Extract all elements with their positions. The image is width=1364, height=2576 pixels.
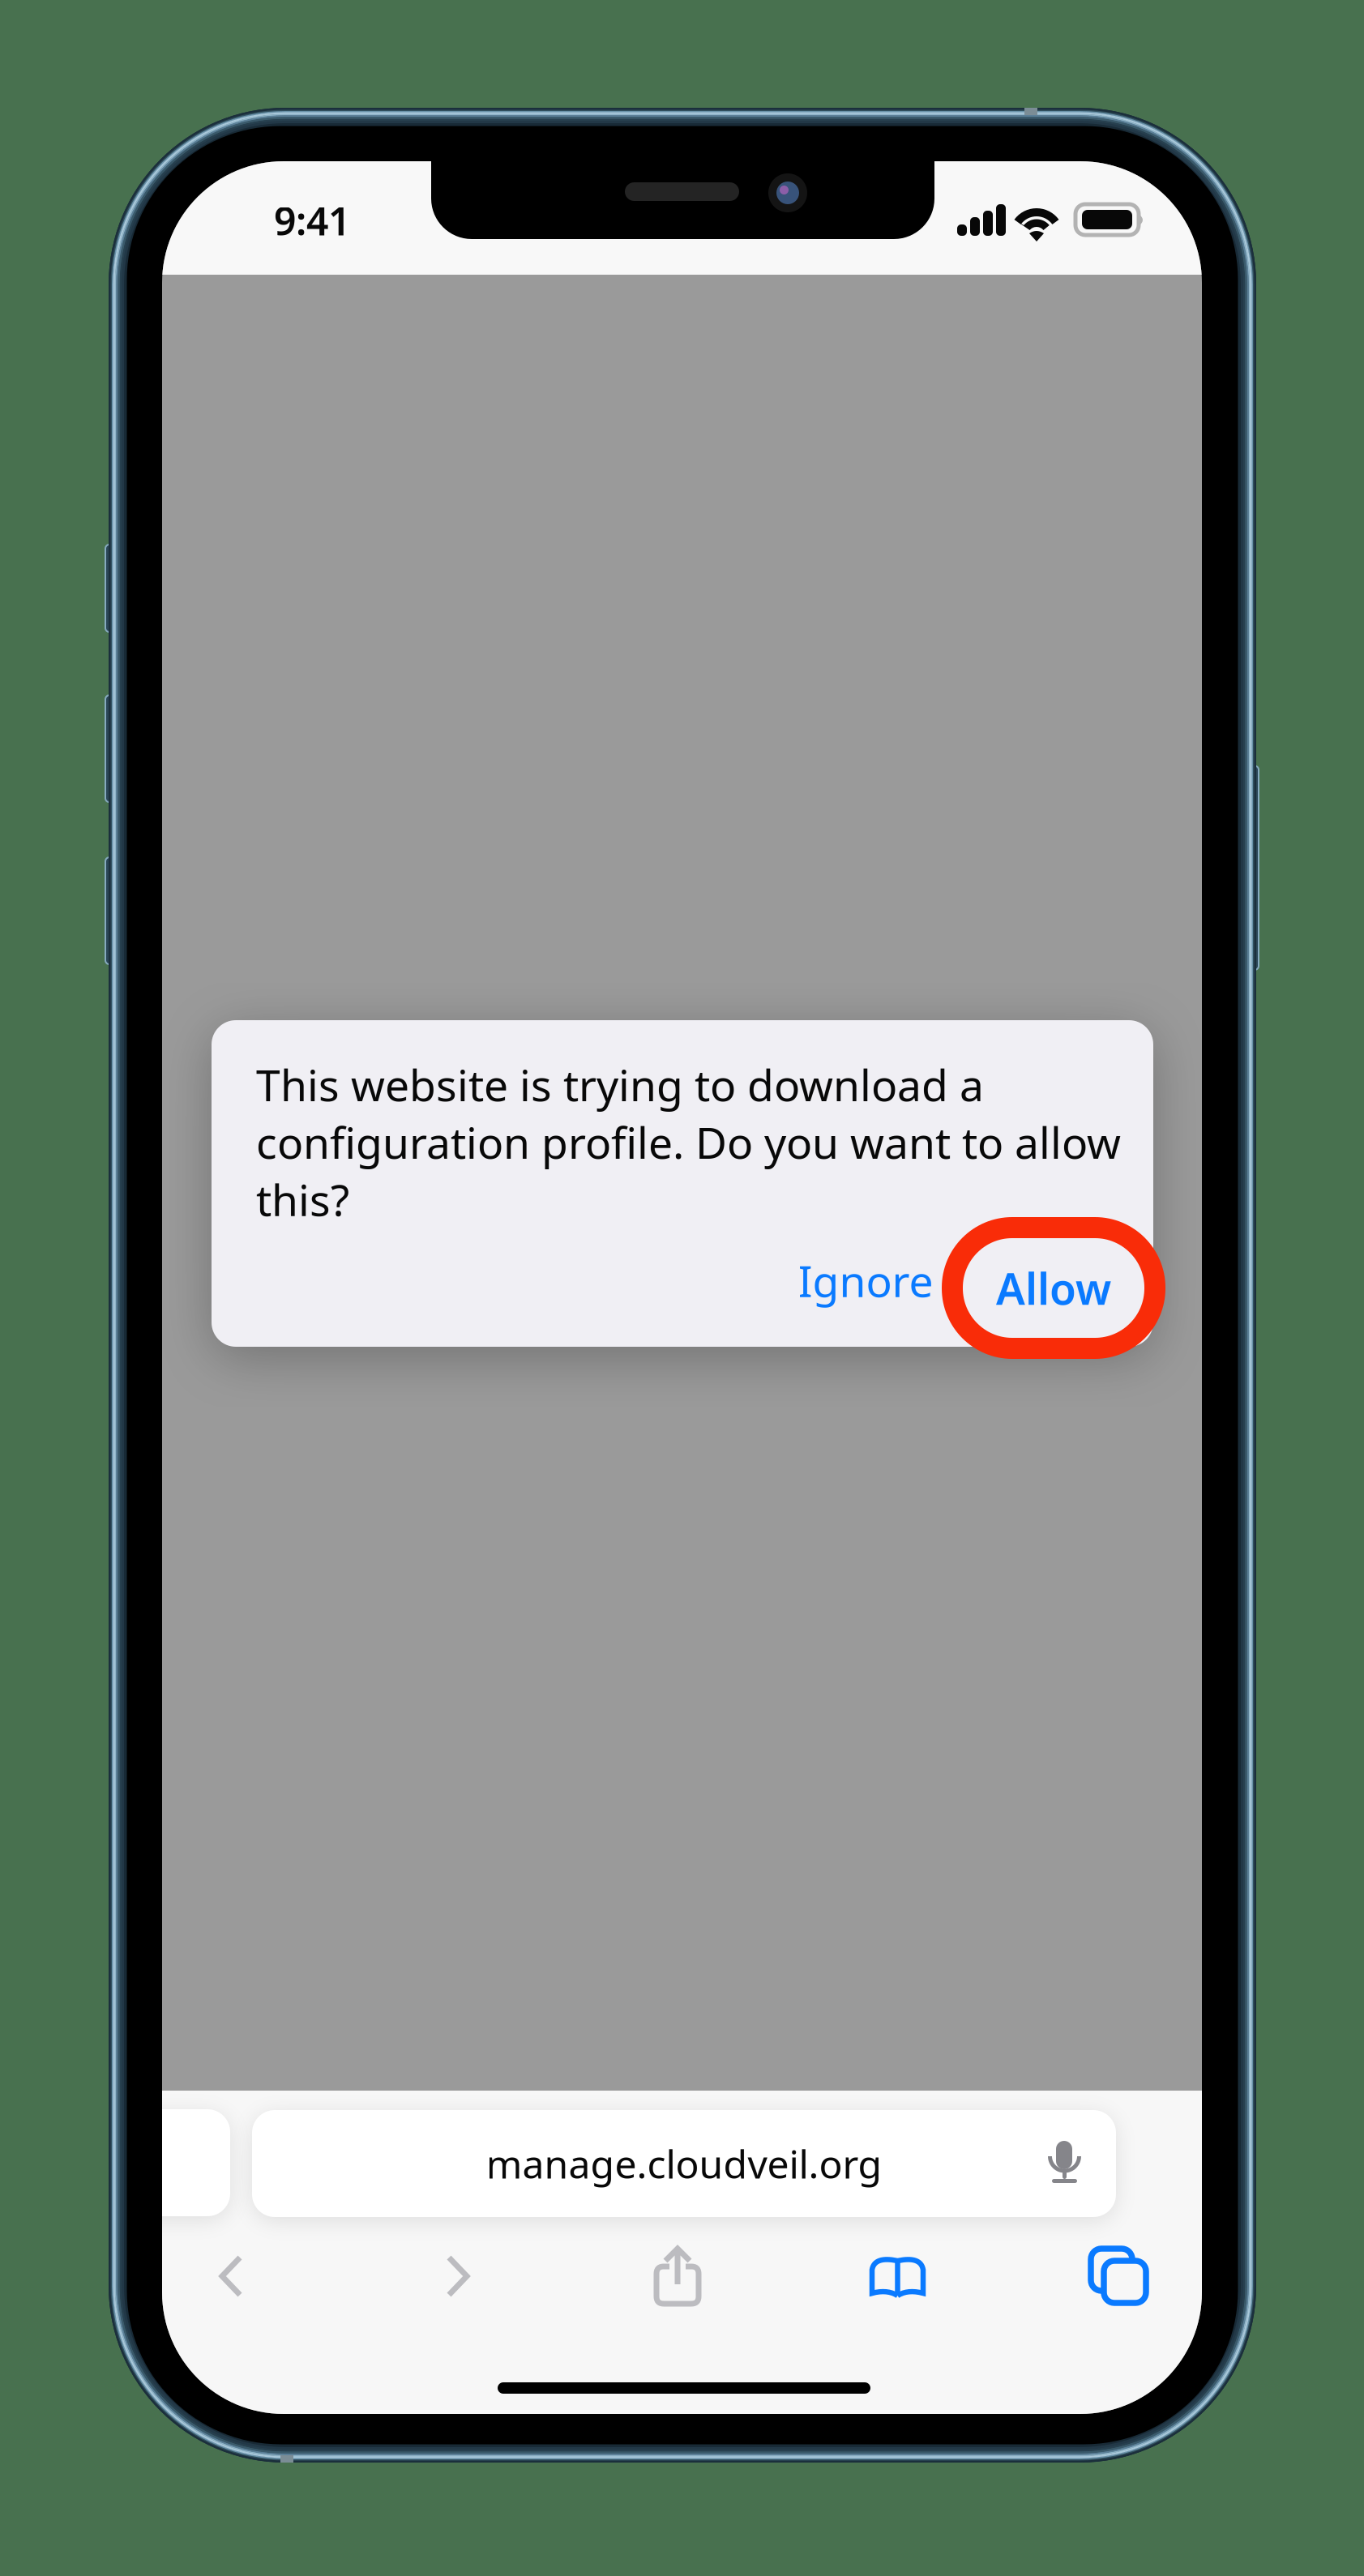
staticText: This website is trying to download a con… (256, 1056, 1121, 1228)
button[interactable]: Ignore (772, 1232, 959, 1329)
button[interactable]: Tabs (1091, 2249, 1147, 2304)
button[interactable]: Bookmarks (869, 2253, 926, 2300)
staticText: Ignore (798, 1252, 933, 1309)
staticText: Allow (996, 1259, 1111, 1317)
staticText: manage.cloudveil.org (486, 2138, 882, 2189)
button[interactable]: Back (219, 2254, 244, 2299)
button[interactable]: Forward (446, 2254, 471, 2299)
button[interactable]: manage.cloudveil.org (252, 2110, 1116, 2217)
button[interactable]: Share (653, 2245, 702, 2307)
staticText: 9:41 (274, 195, 350, 246)
button[interactable]: Allow (942, 1217, 1165, 1359)
